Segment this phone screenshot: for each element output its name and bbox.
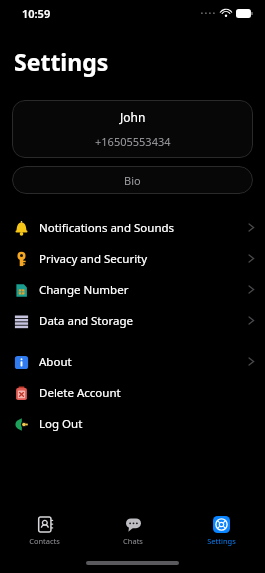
staticText: Data and Storage: [39, 313, 134, 329]
button[interactable]: John: [12, 100, 253, 158]
button[interactable]: Notifications and Sounds: [0, 212, 265, 243]
staticText: Contacts: [29, 536, 60, 546]
staticText: Settings: [207, 536, 236, 546]
button[interactable]: Delete Account: [0, 377, 265, 408]
staticText: Privacy and Security: [39, 251, 148, 267]
staticText: Log Out: [39, 416, 83, 432]
staticText: John: [120, 109, 146, 125]
staticText: Delete Account: [39, 385, 121, 401]
staticText: Settings: [14, 46, 109, 77]
button[interactable]: Change Number: [0, 274, 265, 305]
button[interactable]: About: [0, 346, 265, 377]
button[interactable]: Bio: [12, 166, 253, 194]
button[interactable]: Data and Storage: [0, 305, 265, 336]
button[interactable]: Log Out: [0, 408, 265, 439]
button[interactable]: Settings: [177, 507, 265, 553]
staticText: Chats: [123, 536, 143, 546]
staticText: Notifications and Sounds: [39, 220, 175, 236]
button[interactable]: Chats: [89, 507, 177, 553]
staticText: Change Number: [39, 282, 129, 298]
staticText: Bio: [124, 173, 141, 188]
button[interactable]: Contacts: [0, 507, 89, 553]
staticText: About: [39, 354, 72, 370]
button[interactable]: Privacy and Security: [0, 243, 265, 274]
staticText: 10:59: [22, 6, 51, 21]
staticText: +16505553434: [95, 134, 171, 149]
